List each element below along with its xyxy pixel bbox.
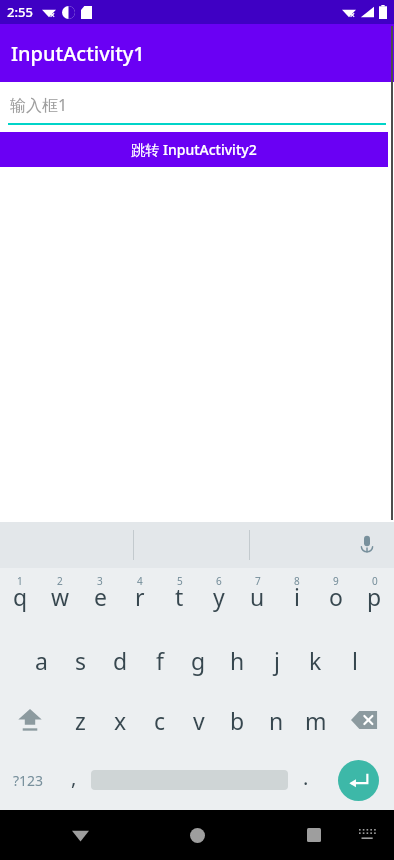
button[interactable]: j (257, 630, 296, 690)
button[interactable]: 0 (355, 570, 394, 630)
staticText: w (51, 581, 70, 612)
button[interactable]: h (218, 630, 257, 690)
staticText: i (294, 581, 300, 612)
button[interactable]: Shift (0, 690, 60, 750)
button[interactable]: Home (175, 813, 219, 857)
staticText: 跳转 InputActivity2 (131, 140, 257, 159)
staticText: InputActivity1 (11, 40, 145, 67)
button[interactable]: d (101, 630, 140, 690)
staticText: n (269, 705, 284, 736)
staticText: 2:55 (7, 3, 33, 21)
button[interactable]: Space (91, 750, 288, 810)
staticText: d (113, 645, 128, 676)
staticText: 8 (294, 574, 300, 588)
button[interactable]: b (218, 690, 257, 750)
staticText: r (135, 581, 145, 612)
button[interactable]: g (179, 630, 218, 690)
button[interactable]: 6 (199, 570, 238, 630)
staticText: t (175, 581, 184, 612)
button[interactable]: 输入框1 (8, 90, 386, 125)
button[interactable]: Recent apps (292, 813, 336, 857)
button[interactable]: 5 (160, 570, 199, 630)
staticText: v (193, 705, 205, 736)
button[interactable]: s (61, 630, 101, 690)
button[interactable]: 1 (0, 570, 40, 630)
button[interactable]: 3 (80, 570, 120, 630)
button[interactable]: 8 (277, 570, 316, 630)
staticText: 1 (17, 574, 23, 588)
button[interactable]: x (100, 690, 140, 750)
staticText: q (13, 581, 28, 612)
staticText: g (191, 645, 206, 676)
staticText: m (305, 705, 327, 736)
staticText: z (75, 705, 86, 736)
button[interactable]: l (335, 630, 374, 690)
staticText: p (367, 581, 382, 612)
staticText: x (114, 705, 127, 736)
button[interactable]: 2 (40, 570, 80, 630)
staticText: u (250, 581, 265, 612)
button[interactable]: v (179, 690, 218, 750)
staticText: 3 (97, 574, 103, 588)
button[interactable]: m (296, 690, 335, 750)
button[interactable]: z (60, 690, 100, 750)
button[interactable]: 7 (238, 570, 277, 630)
staticText: 4 (137, 574, 143, 588)
button[interactable]: a (21, 630, 61, 690)
button[interactable]: 9 (316, 570, 355, 630)
staticText: 7 (255, 574, 261, 588)
button[interactable]: 4 (120, 570, 160, 630)
staticText: . (303, 764, 309, 791)
button[interactable]: . (288, 750, 323, 810)
button[interactable]: Backspace (335, 690, 394, 750)
staticText: b (230, 705, 245, 736)
staticText: a (35, 645, 48, 676)
staticText: o (329, 581, 343, 612)
button[interactable]: Switch keyboard (348, 815, 388, 855)
button[interactable]: f (140, 630, 179, 690)
button[interactable]: Back (58, 813, 102, 857)
button[interactable]: 跳转 InputActivity2 (0, 132, 388, 167)
staticText: f (156, 645, 164, 676)
button[interactable]: Enter (323, 750, 394, 810)
button[interactable]: n (257, 690, 296, 750)
staticText: 9 (333, 574, 339, 588)
staticText: j (274, 645, 280, 676)
staticText: , (71, 764, 77, 791)
staticText: 5 (177, 574, 183, 588)
staticText: h (230, 645, 245, 676)
button[interactable]: , (56, 750, 91, 810)
staticText: 2 (57, 574, 63, 588)
button[interactable]: Voice input (352, 530, 382, 560)
staticText: 输入框1 (10, 94, 68, 116)
staticText: c (154, 705, 166, 736)
staticText: 0 (372, 574, 378, 588)
staticText: y (213, 581, 225, 612)
staticText: l (352, 645, 358, 676)
button[interactable]: c (140, 690, 179, 750)
button[interactable]: ?123 (0, 750, 56, 810)
staticText: 6 (216, 574, 222, 588)
staticText: s (75, 645, 87, 676)
staticText: ?123 (13, 771, 44, 790)
button[interactable]: k (296, 630, 335, 690)
staticText: k (309, 645, 322, 676)
staticText: e (94, 581, 107, 612)
